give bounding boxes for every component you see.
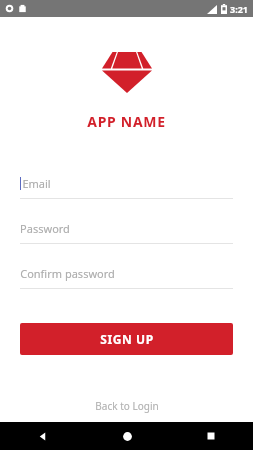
button[interactable]: Confirm password (20, 266, 233, 289)
staticText: Password (20, 221, 70, 236)
staticText: Email (22, 176, 51, 191)
button[interactable]: SIGN UP (20, 323, 233, 355)
button[interactable]: Back (0, 422, 85, 450)
button[interactable]: Home (85, 422, 169, 450)
staticText: SIGN UP (100, 331, 154, 347)
staticText: 3:21 (230, 3, 248, 15)
staticText: Confirm password (20, 266, 115, 281)
button[interactable]: Password (20, 221, 233, 244)
button[interactable]: Email (20, 176, 233, 199)
staticText: Back to Login (95, 399, 159, 413)
staticText: APP NAME (0, 112, 253, 131)
button[interactable]: Recent apps (169, 422, 253, 450)
button[interactable]: Back to Login (0, 399, 253, 413)
